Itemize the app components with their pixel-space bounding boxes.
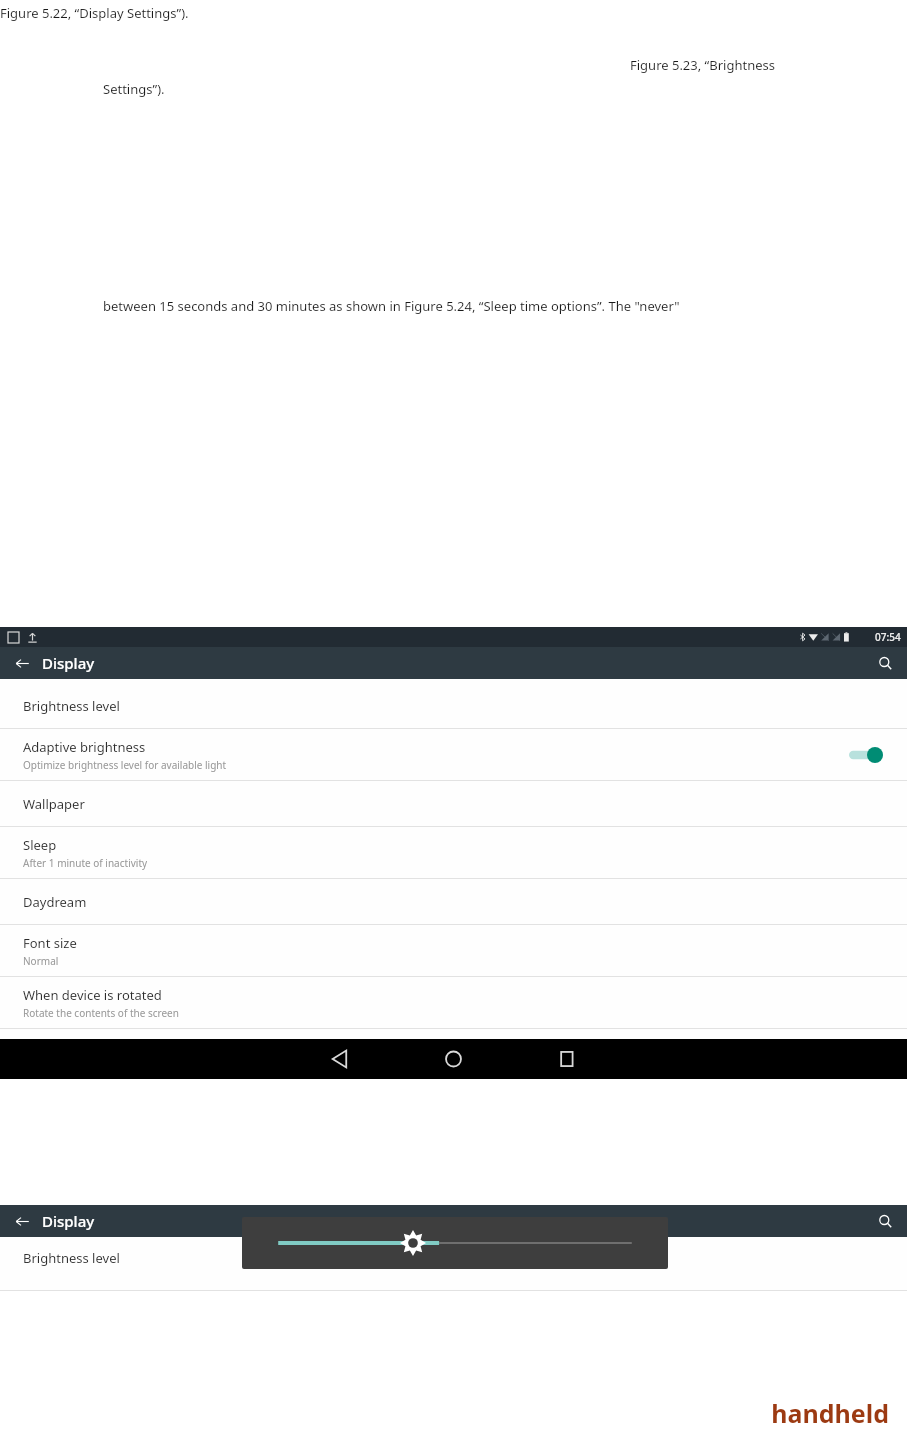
staticText: Sleep (23, 836, 57, 854)
staticText: handheld (771, 1396, 889, 1430)
button[interactable]: When device is rotated (0, 977, 907, 1029)
staticText: Optimize brightness level for available … (23, 758, 227, 772)
staticText: After 1 minute of inactivity (23, 856, 148, 870)
staticText: Brightness level (23, 697, 120, 715)
staticText: 07:54 (875, 630, 901, 644)
staticText: Display (42, 653, 95, 673)
staticText: Figure 5.22, “Display Settings”). (0, 4, 189, 22)
button[interactable]: Daydream (0, 879, 907, 925)
button[interactable]: Back (10, 1209, 34, 1233)
button[interactable]: Wallpaper (0, 781, 907, 827)
button[interactable]: Brightness level (0, 683, 907, 729)
staticText: Display (42, 1211, 95, 1231)
staticText: Font size (23, 934, 77, 952)
staticText: between 15 seconds and 30 minutes as sho… (103, 297, 680, 315)
staticText: When device is rotated (23, 986, 162, 1004)
button[interactable]: Search (873, 1209, 897, 1233)
staticText: Wallpaper (23, 795, 85, 813)
button[interactable]: Font size (0, 925, 907, 977)
staticText: Brightness level (23, 1249, 120, 1267)
staticText: Daydream (23, 893, 87, 911)
other: Navigation bar (0, 1039, 907, 1079)
button[interactable]: Back (10, 651, 34, 675)
button[interactable]: Brightness slider (242, 1217, 668, 1269)
button[interactable]: Search (873, 651, 897, 675)
staticText: Normal (23, 954, 59, 968)
staticText: Figure 5.23, “Brightness (630, 56, 775, 74)
button[interactable]: Sleep (0, 827, 907, 879)
staticText: Settings”). (103, 80, 165, 98)
staticText: Rotate the contents of the screen (23, 1006, 179, 1020)
button[interactable]: Adaptive brightness toggle (849, 745, 883, 765)
button[interactable]: Adaptive brightness (0, 729, 907, 781)
staticText: Adaptive brightness (23, 738, 146, 756)
